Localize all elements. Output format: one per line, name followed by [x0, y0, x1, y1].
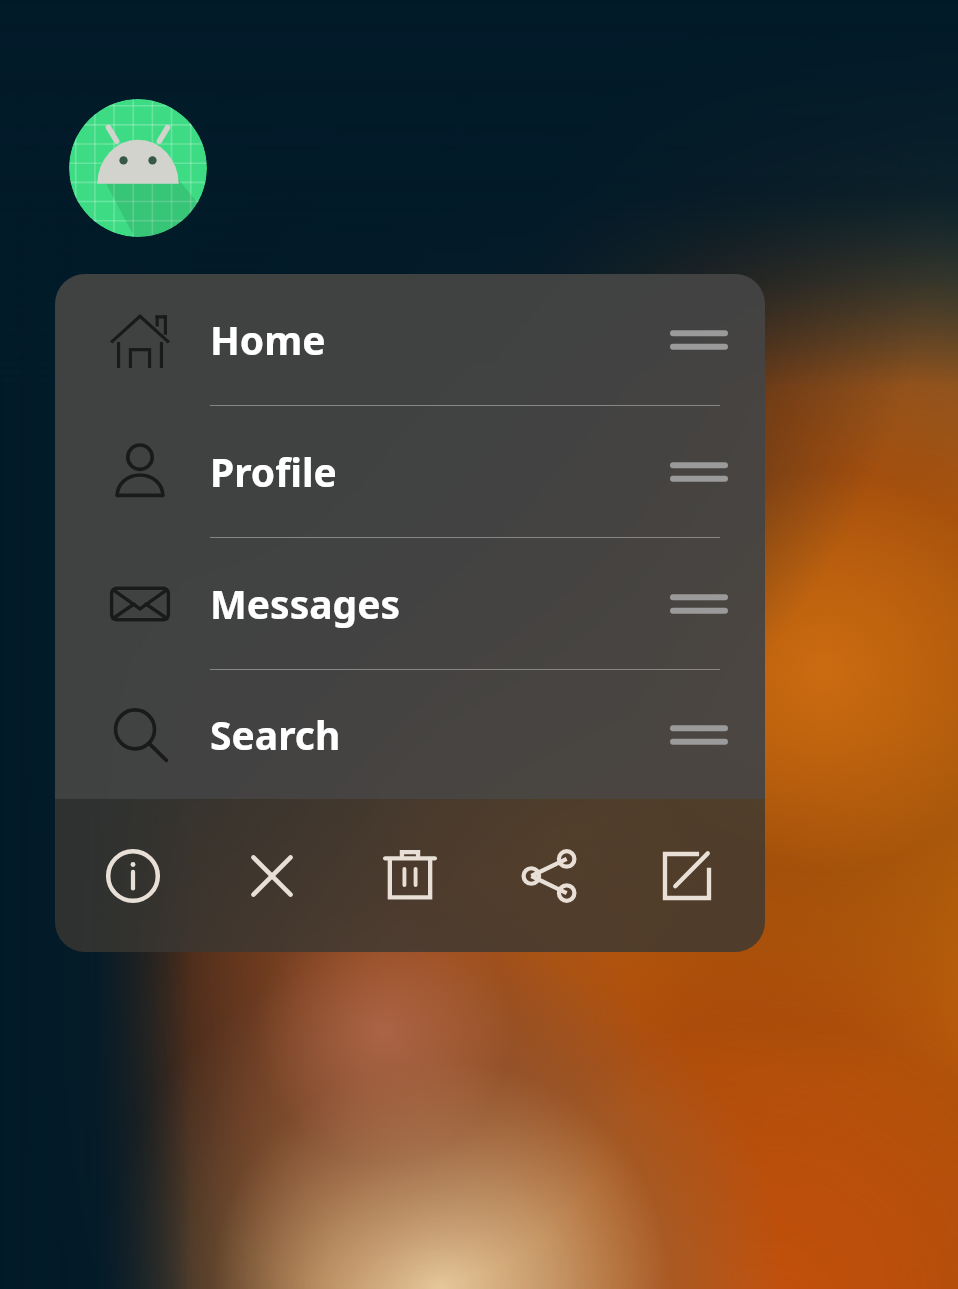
- button[interactable]: Profile: [55, 406, 765, 537]
- staticText: Home: [210, 313, 326, 366]
- staticText: Search: [210, 708, 341, 761]
- button[interactable]: Search: [55, 670, 765, 799]
- button[interactable]: Profile avatar: [69, 99, 207, 237]
- button[interactable]: Close: [234, 838, 310, 914]
- button[interactable]: Info: [95, 838, 171, 914]
- staticText: Profile: [210, 445, 337, 498]
- staticText: Messages: [210, 577, 401, 630]
- button[interactable]: Home: [55, 274, 765, 405]
- button[interactable]: Share: [511, 838, 587, 914]
- button[interactable]: Delete: [372, 838, 448, 914]
- button[interactable]: Edit: [649, 838, 725, 914]
- button[interactable]: Messages: [55, 538, 765, 669]
